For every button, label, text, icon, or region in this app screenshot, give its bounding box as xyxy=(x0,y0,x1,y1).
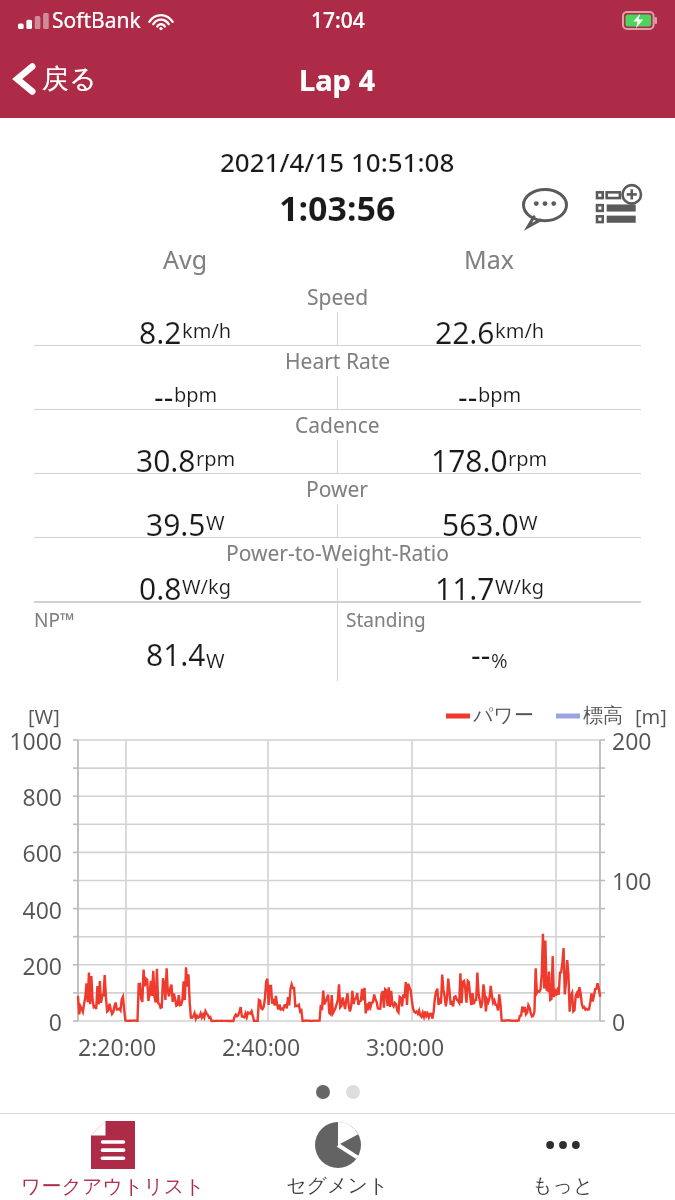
staticText: bpm xyxy=(478,381,522,408)
staticText: 178.0 xyxy=(431,440,508,473)
staticText: 1:03:56 xyxy=(279,185,396,231)
staticText: Heart Rate xyxy=(285,347,391,376)
staticText: % xyxy=(491,647,508,674)
staticText: 563.0 xyxy=(442,504,519,537)
staticText: 2:40:00 xyxy=(222,1031,301,1062)
button[interactable]: セグメント xyxy=(225,1114,450,1200)
staticText: 39.5 xyxy=(146,504,206,537)
staticText: W xyxy=(206,509,225,536)
staticText: 2:20:00 xyxy=(78,1031,157,1062)
staticText: Standing xyxy=(346,607,426,633)
staticText: [W] xyxy=(28,703,60,730)
staticText: [m] xyxy=(635,703,667,730)
staticText: -- xyxy=(471,634,491,675)
staticText: 標高 xyxy=(583,703,623,728)
staticText: rpm xyxy=(196,445,236,472)
staticText: 200 xyxy=(612,725,652,756)
staticText: 17:04 xyxy=(311,6,365,35)
staticText: 22.6 xyxy=(435,312,495,345)
button[interactable]: もっと xyxy=(450,1114,675,1200)
staticText: -- xyxy=(154,376,174,409)
staticText: W/kg xyxy=(495,573,545,600)
staticText: 0.8 xyxy=(139,568,182,601)
staticText: 0 xyxy=(0,1006,62,1037)
staticText: km/h xyxy=(495,317,545,344)
staticText: km/h xyxy=(182,317,232,344)
staticText: NP™ xyxy=(34,607,75,633)
staticText: Max xyxy=(464,242,514,276)
staticText: 100 xyxy=(612,865,652,896)
button[interactable]: ワークアウトリスト xyxy=(0,1114,225,1200)
button[interactable]: Comments xyxy=(517,180,573,236)
staticText: Power xyxy=(306,475,369,504)
staticText: rpm xyxy=(508,445,548,472)
staticText: W xyxy=(206,647,225,674)
staticText: ワークアウトリスト xyxy=(21,1174,205,1199)
staticText: 8.2 xyxy=(139,312,182,345)
staticText: 1000 xyxy=(0,725,62,756)
staticText: Power-to-Weight-Ratio xyxy=(226,539,449,568)
staticText: Lap 4 xyxy=(299,60,376,99)
staticText: -- xyxy=(458,376,478,409)
staticText: 2021/4/15 10:51:08 xyxy=(220,144,455,179)
staticText: 600 xyxy=(0,837,62,868)
staticText: 戻る xyxy=(42,62,97,96)
staticText: W/kg xyxy=(182,573,232,600)
staticText: Speed xyxy=(307,283,369,312)
staticText: パワー xyxy=(473,703,534,728)
staticText: 11.7 xyxy=(435,568,495,601)
button[interactable]: Add to list xyxy=(591,180,647,236)
staticText: 81.4 xyxy=(146,634,206,675)
staticText: 200 xyxy=(0,950,62,981)
staticText: SoftBank xyxy=(52,6,141,35)
staticText: 3:00:00 xyxy=(366,1031,445,1062)
staticText: 0 xyxy=(612,1006,626,1037)
staticText: Cadence xyxy=(295,411,380,440)
staticText: セグメント xyxy=(286,1173,389,1198)
staticText: Avg xyxy=(163,242,208,276)
staticText: もっと xyxy=(532,1173,594,1198)
staticText: bpm xyxy=(174,381,218,408)
staticText: W xyxy=(519,509,538,536)
button[interactable]: 戻る xyxy=(0,52,111,106)
staticText: 400 xyxy=(0,894,62,925)
staticText: 800 xyxy=(0,781,62,812)
staticText: 30.8 xyxy=(136,440,196,473)
